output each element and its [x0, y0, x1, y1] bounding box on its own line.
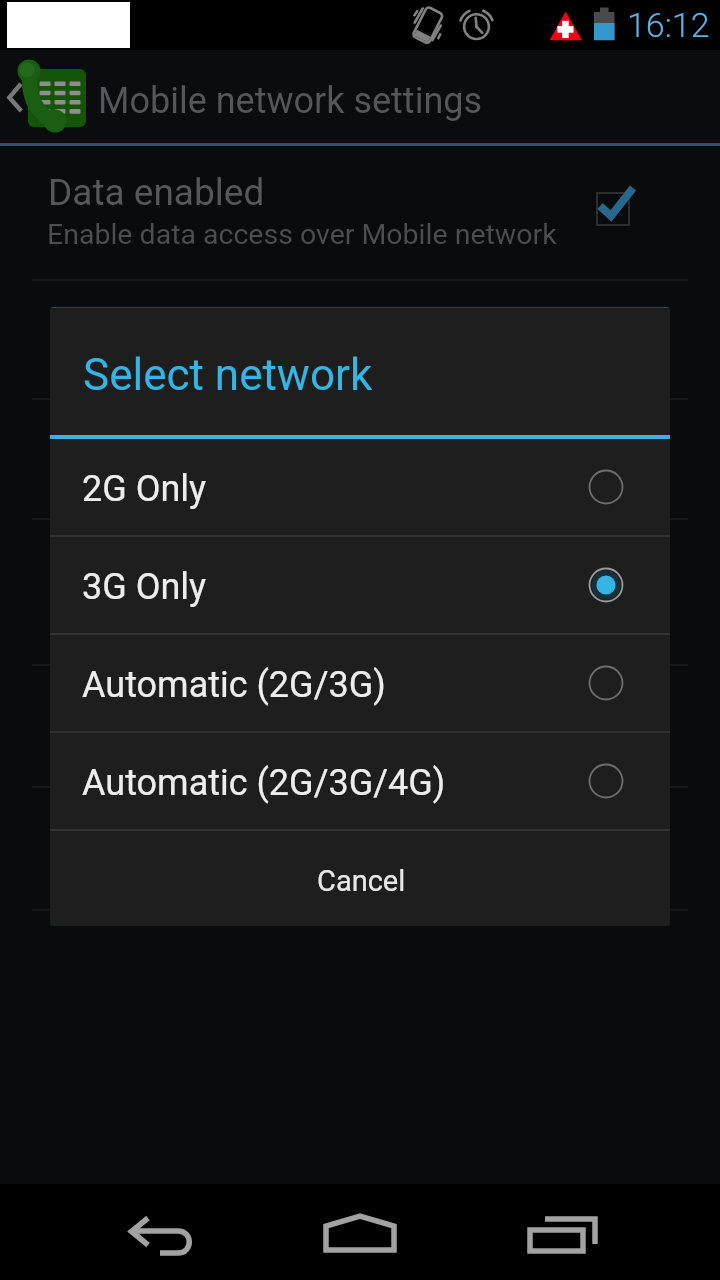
staticText: Cancel	[317, 864, 406, 898]
button[interactable]: Cancel	[50, 831, 670, 926]
staticText: 2G Only	[82, 468, 207, 510]
staticText: Automatic (2G/3G/4G)	[82, 762, 446, 804]
staticText: Enable data access over Mobile network	[47, 218, 557, 251]
staticText: Automatic (2G/3G)	[82, 664, 386, 706]
staticText: Data enabled	[48, 171, 265, 214]
staticText: Select network	[83, 349, 373, 401]
button[interactable]: 3G Only	[50, 537, 670, 635]
staticText: 16:12	[627, 5, 710, 45]
staticText: Mobile network settings	[98, 80, 483, 122]
button[interactable]: Automatic (2G/3G)	[50, 635, 670, 733]
button[interactable]: Automatic (2G/3G/4G)	[50, 733, 670, 831]
button[interactable]: Recent apps	[460, 1184, 660, 1280]
button[interactable]: 2G Only	[50, 439, 670, 537]
button[interactable]: Back	[60, 1184, 260, 1280]
button[interactable]: Home	[260, 1184, 460, 1280]
staticText: 3G Only	[82, 566, 207, 608]
